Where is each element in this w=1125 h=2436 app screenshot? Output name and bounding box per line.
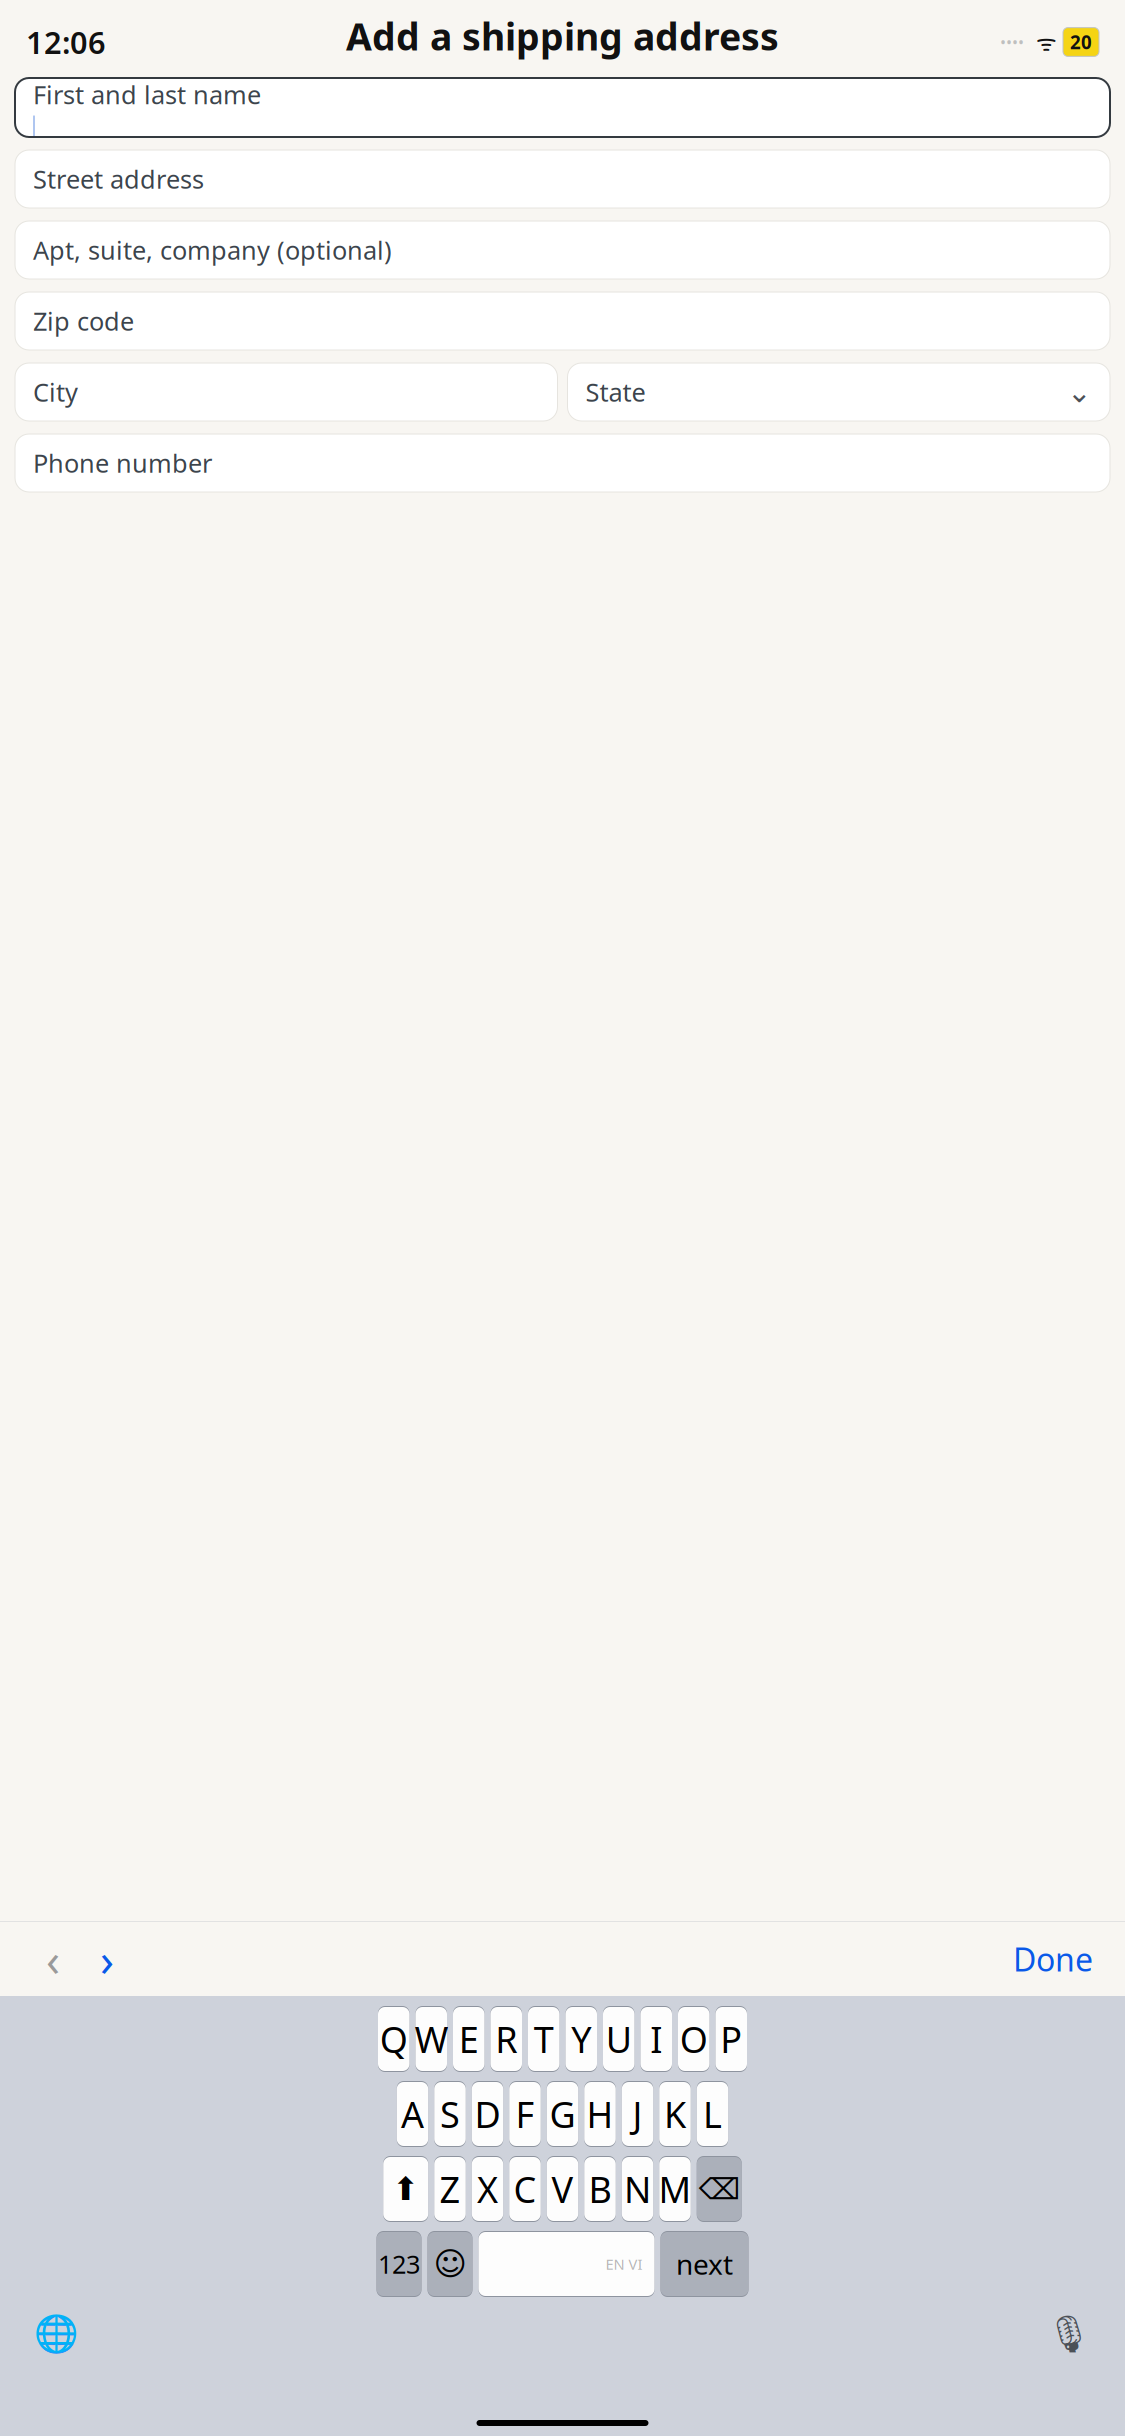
button[interactable]: O <box>678 2005 709 2073</box>
staticText: X <box>477 2165 498 2213</box>
staticText: First and last name <box>33 78 261 111</box>
staticText: D <box>474 2090 500 2138</box>
staticText: R <box>495 2015 517 2063</box>
staticText: M <box>658 2165 691 2213</box>
staticText: K <box>664 2090 686 2138</box>
staticText: D <box>474 2090 500 2138</box>
button[interactable]: Dictation <box>1039 2308 1099 2360</box>
staticText: K <box>664 2090 686 2138</box>
button[interactable]: Z <box>434 2155 466 2223</box>
button[interactable]: Y <box>565 2005 597 2073</box>
staticText: ⌄ <box>1067 375 1092 409</box>
button[interactable]: Shift <box>383 2155 428 2223</box>
staticText: U <box>606 2015 632 2063</box>
staticText: S <box>440 2090 460 2138</box>
button[interactable]: C <box>509 2155 541 2223</box>
button[interactable]: Previous field <box>26 1934 80 1984</box>
button[interactable]: E <box>453 2005 484 2073</box>
staticText: O <box>680 2015 708 2063</box>
button[interactable]: M <box>659 2155 691 2223</box>
staticText: W <box>415 2015 448 2063</box>
staticText: next <box>676 2245 733 2283</box>
staticText: V <box>551 2165 573 2213</box>
button[interactable]: S <box>434 2080 466 2148</box>
staticText: 12:06 <box>26 22 106 62</box>
staticText: A <box>401 2090 424 2138</box>
staticText: Y <box>571 2015 591 2063</box>
button[interactable]: P <box>715 2005 747 2073</box>
button[interactable]: First and last name <box>15 78 1110 137</box>
staticText: L <box>703 2090 722 2138</box>
staticText: Street address <box>33 162 204 196</box>
button[interactable]: J <box>622 2080 653 2148</box>
staticText: ᯤ <box>1024 27 1063 57</box>
button[interactable]: Emoji <box>427 2230 472 2298</box>
button[interactable]: V <box>547 2155 578 2223</box>
staticText: City <box>33 375 78 409</box>
staticText: N <box>624 2165 651 2213</box>
staticText: S <box>440 2090 460 2138</box>
staticText: ‹ <box>46 1929 60 1989</box>
button[interactable]: R <box>490 2005 522 2073</box>
button[interactable]: Phone number <box>15 434 1110 492</box>
staticText: T <box>534 2015 554 2063</box>
button[interactable]: next <box>660 2230 748 2298</box>
button[interactable]: U <box>603 2005 634 2073</box>
staticText: M <box>658 2165 691 2213</box>
staticText: EN VI <box>607 2254 644 2274</box>
button[interactable]: Delete <box>697 2155 742 2223</box>
staticText: L <box>703 2090 722 2138</box>
staticText: G <box>549 2090 575 2138</box>
button[interactable]: T <box>528 2005 559 2073</box>
button[interactable]: State <box>567 363 1110 421</box>
staticText: Phone number <box>33 446 212 480</box>
button[interactable]: I <box>640 2005 672 2073</box>
button[interactable]: W <box>415 2005 447 2073</box>
staticText: T <box>534 2015 554 2063</box>
button[interactable]: F <box>509 2080 541 2148</box>
staticText: V <box>551 2165 573 2213</box>
staticText: O <box>680 2015 708 2063</box>
button[interactable]: H <box>584 2080 616 2148</box>
staticText: Done <box>1013 1938 1093 1980</box>
button[interactable]: K <box>659 2080 691 2148</box>
staticText: Q <box>380 2015 408 2063</box>
staticText: P <box>720 2015 742 2063</box>
button[interactable]: 123 <box>376 2230 421 2298</box>
staticText: ⬆ <box>392 2171 419 2207</box>
staticText: •••• <box>1000 31 1024 53</box>
button[interactable]: Next field <box>80 1934 134 1984</box>
staticText: Zip code <box>33 304 134 338</box>
staticText: State <box>585 375 645 409</box>
staticText: J <box>632 2090 642 2138</box>
staticText: ⬆ <box>392 2171 419 2207</box>
staticText: Add a shipping address <box>346 11 779 61</box>
button[interactable]: Apt, suite, company (optional) <box>15 221 1110 279</box>
button[interactable]: D <box>472 2080 503 2148</box>
staticText: G <box>549 2090 575 2138</box>
staticText: Apt, suite, company (optional) <box>33 233 392 267</box>
staticText: ⌫ <box>699 2172 740 2206</box>
staticText: R <box>495 2015 517 2063</box>
button[interactable]: Next keyboard <box>26 2308 86 2360</box>
staticText: H <box>586 2090 613 2138</box>
button[interactable]: Done <box>1007 1934 1099 1984</box>
button[interactable]: Q <box>378 2005 409 2073</box>
button[interactable]: N <box>622 2155 653 2223</box>
button[interactable]: L <box>697 2080 728 2148</box>
staticText: I <box>650 2015 662 2063</box>
button[interactable]: Zip code <box>15 292 1110 350</box>
staticText: 123 <box>378 2247 420 2281</box>
staticText: B <box>588 2165 611 2213</box>
button[interactable]: City <box>15 363 557 421</box>
button[interactable]: space <box>478 2231 654 2297</box>
button[interactable]: A <box>397 2080 428 2148</box>
staticText: P <box>720 2015 742 2063</box>
button[interactable]: G <box>547 2080 578 2148</box>
button[interactable]: Street address <box>15 150 1110 208</box>
button[interactable]: X <box>472 2155 503 2223</box>
staticText: I <box>650 2015 662 2063</box>
button[interactable]: B <box>584 2155 616 2223</box>
staticText: 20 <box>1070 30 1092 54</box>
staticText: U <box>606 2015 632 2063</box>
